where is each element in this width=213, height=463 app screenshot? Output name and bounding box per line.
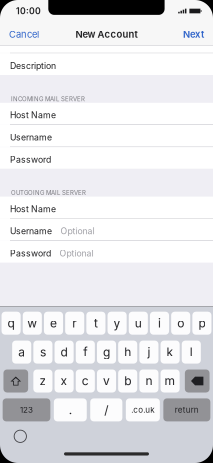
button[interactable]: q: [2, 312, 21, 335]
button[interactable]: .co.uk: [126, 398, 160, 421]
button[interactable]: Username: [0, 125, 213, 147]
button[interactable]: Next: [176, 22, 213, 45]
staticText: .co.uk: [131, 405, 154, 415]
button[interactable]: r: [65, 312, 84, 335]
staticText: v: [103, 374, 110, 388]
button[interactable]: d: [55, 341, 74, 364]
staticText: Host Name: [10, 110, 56, 120]
staticText: q: [8, 316, 15, 330]
staticText: u: [135, 316, 142, 330]
button[interactable]: Emoji keyboard: [13, 429, 27, 443]
staticText: INCOMING MAIL SERVER: [11, 95, 85, 103]
button[interactable]: 123: [3, 398, 50, 421]
button[interactable]: Delete: [185, 369, 209, 392]
staticText: z: [39, 374, 46, 388]
staticText: o: [177, 316, 184, 330]
staticText: 123: [20, 405, 33, 415]
staticText: Username: [10, 132, 52, 143]
button[interactable]: f: [76, 341, 95, 364]
staticText: Optional: [59, 248, 93, 259]
button[interactable]: Password: [0, 241, 213, 263]
button[interactable]: p: [192, 312, 211, 335]
staticText: r: [72, 316, 77, 330]
staticText: 10:00: [16, 6, 41, 16]
staticText: s: [40, 345, 46, 359]
staticText: Password: [10, 154, 51, 165]
staticText: OUTGOING MAIL SERVER: [11, 189, 86, 196]
button[interactable]: w: [23, 312, 42, 335]
button[interactable]: n: [139, 369, 158, 392]
button[interactable]: e: [44, 312, 63, 335]
button[interactable]: /: [90, 398, 122, 421]
button[interactable]: m: [161, 369, 180, 392]
staticText: Username: [10, 226, 52, 236]
button[interactable]: i: [150, 312, 169, 335]
staticText: i: [158, 316, 161, 330]
button[interactable]: o: [171, 312, 190, 335]
staticText: w: [27, 316, 37, 330]
button[interactable]: g: [97, 341, 116, 364]
staticText: p: [198, 316, 205, 330]
staticText: Next: [183, 29, 204, 40]
button[interactable]: Description: [0, 53, 213, 75]
button[interactable]: Host Name: [0, 197, 213, 218]
staticText: m: [165, 374, 176, 388]
button[interactable]: y: [108, 312, 127, 335]
staticText: New Account: [75, 29, 137, 40]
button[interactable]: Username: [0, 219, 213, 240]
staticText: h: [124, 345, 131, 359]
button[interactable]: h: [118, 341, 137, 364]
staticText: Optional: [60, 226, 94, 236]
staticText: d: [61, 345, 68, 359]
staticText: Host Name: [10, 204, 56, 214]
button[interactable]: .: [54, 398, 87, 421]
staticText: f: [83, 345, 87, 359]
staticText: y: [114, 316, 121, 330]
staticText: b: [124, 374, 131, 388]
staticText: c: [82, 374, 89, 388]
staticText: a: [18, 345, 25, 359]
staticText: j: [147, 345, 150, 359]
button[interactable]: Host Name: [0, 103, 213, 124]
staticText: n: [145, 374, 152, 388]
staticText: t: [94, 316, 98, 330]
button[interactable]: return: [163, 398, 210, 421]
button[interactable]: j: [139, 341, 158, 364]
staticText: k: [167, 345, 174, 359]
button[interactable]: x: [55, 369, 74, 392]
staticText: x: [61, 374, 68, 388]
button[interactable]: Shift: [3, 369, 28, 392]
button[interactable]: l: [182, 341, 201, 364]
staticText: l: [190, 345, 193, 359]
staticText: .: [69, 403, 72, 417]
staticText: e: [50, 316, 57, 330]
button[interactable]: Cancel: [0, 22, 46, 45]
staticText: Password: [10, 248, 51, 259]
button[interactable]: c: [76, 369, 95, 392]
staticText: g: [103, 345, 110, 359]
button[interactable]: v: [97, 369, 116, 392]
button[interactable]: b: [118, 369, 137, 392]
staticText: return: [175, 405, 199, 415]
button[interactable]: s: [33, 341, 52, 364]
staticText: Cancel: [9, 29, 39, 40]
staticText: /: [104, 403, 108, 417]
button[interactable]: t: [86, 312, 105, 335]
button[interactable]: k: [161, 341, 180, 364]
staticText: Description: [10, 61, 56, 71]
button[interactable]: u: [129, 312, 148, 335]
button[interactable]: a: [12, 341, 31, 364]
button[interactable]: z: [33, 369, 52, 392]
button[interactable]: Password: [0, 147, 213, 169]
